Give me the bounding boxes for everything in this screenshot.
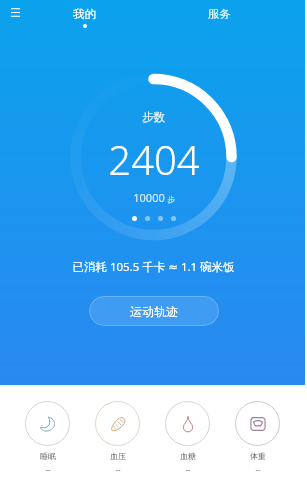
button[interactable]: 体重 (226, 400, 288, 480)
button[interactable]: 血糖 (156, 400, 218, 480)
button[interactable]: 睡眠 (16, 400, 78, 480)
button[interactable]: 运动轨迹 (89, 296, 219, 326)
staticText: -- (45, 464, 51, 475)
staticText: 步数 (142, 110, 165, 124)
staticText: -- (255, 464, 261, 475)
button[interactable]: 服务 (179, 0, 259, 34)
button[interactable]: Menu (3, 0, 27, 24)
staticText: 运动轨迹 (130, 304, 178, 319)
staticText: -- (115, 464, 121, 475)
button[interactable]: 我的 (44, 0, 124, 34)
staticText: 步 (167, 195, 175, 204)
staticText: 10000 (133, 190, 165, 205)
staticText: 服务 (208, 7, 231, 21)
staticText: 已消耗 105.5 千卡 ≈ 1.1 碗米饭 (72, 259, 235, 275)
staticText: 血糖 (180, 451, 196, 461)
staticText: 血压 (110, 451, 126, 461)
button[interactable]: 血压 (86, 400, 148, 480)
staticText: 睡眠 (40, 451, 56, 461)
staticText: -- (185, 464, 191, 475)
staticText: 体重 (250, 451, 266, 461)
staticText: 我的 (73, 7, 96, 21)
staticText: 2404 (108, 132, 200, 186)
